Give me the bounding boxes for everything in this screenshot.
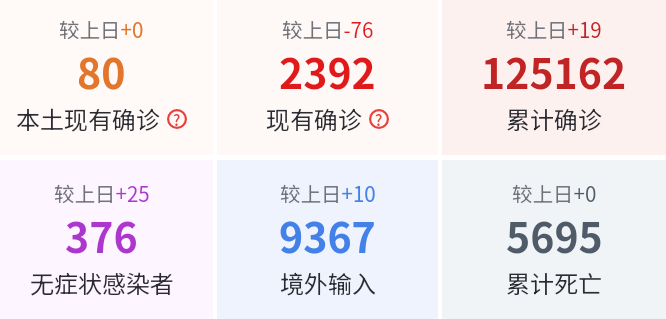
button[interactable]: 较上日-76	[217, 0, 438, 155]
staticText: 累计死亡	[506, 265, 602, 300]
button[interactable]: 较上日+0	[0, 0, 213, 155]
staticText: 376	[65, 205, 138, 264]
staticText: ?	[375, 109, 383, 129]
staticText: 5695	[506, 205, 603, 264]
staticText: 无症状感染者	[30, 265, 174, 300]
staticText: 累计确诊	[506, 101, 602, 136]
staticText: 境外输入	[280, 265, 376, 300]
staticText: 本土现有确诊	[16, 101, 160, 136]
staticText: 较上日+0	[59, 14, 144, 44]
button[interactable]: 较上日+0	[442, 160, 666, 319]
button[interactable]: 说明	[369, 109, 389, 129]
button[interactable]: 较上日+25	[0, 160, 213, 319]
staticText: ?	[173, 109, 181, 129]
staticText: 9367	[279, 205, 376, 264]
staticText: 较上日-76	[282, 14, 374, 44]
staticText: 较上日+0	[512, 178, 597, 208]
staticText: 现有确诊	[266, 101, 362, 136]
button[interactable]: 说明	[167, 109, 187, 129]
staticText: 80	[77, 41, 126, 100]
staticText: 125162	[481, 41, 627, 100]
staticText: 较上日+19	[506, 14, 602, 44]
button[interactable]: 较上日+19	[442, 0, 666, 155]
staticText: 较上日+10	[280, 178, 376, 208]
staticText: 2392	[279, 41, 376, 100]
staticText: 较上日+25	[54, 178, 150, 208]
button[interactable]: 较上日+10	[217, 160, 438, 319]
